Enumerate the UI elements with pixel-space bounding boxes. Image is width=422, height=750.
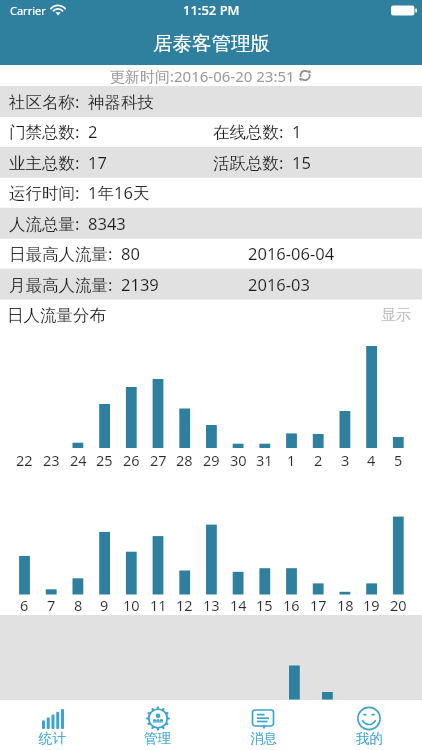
staticText: 31 xyxy=(256,450,273,470)
button[interactable]: 管理 xyxy=(105,700,210,750)
staticText: 13 xyxy=(203,595,220,615)
staticText: 11:52 PM xyxy=(183,1,240,19)
staticText: 日人流量分布 xyxy=(7,305,106,326)
staticText: 27 xyxy=(150,450,167,470)
staticText: 12 xyxy=(176,595,193,615)
staticText: 我的 xyxy=(356,730,383,747)
staticText: 25 xyxy=(96,450,113,470)
staticText: 22 xyxy=(16,450,33,470)
staticText: 7 xyxy=(47,595,56,615)
staticText: 人流总量: 8343 xyxy=(9,212,126,235)
staticText: 14 xyxy=(230,595,247,615)
staticText: 社区名称: 神器科技 xyxy=(9,90,155,113)
staticText: 显示 xyxy=(381,306,411,325)
staticText: 26 xyxy=(123,450,140,470)
staticText: Carrier xyxy=(10,3,46,18)
button[interactable]: 显示 xyxy=(370,300,422,331)
staticText: 4 xyxy=(367,450,376,470)
staticText: 运行时间: 1年16天 xyxy=(9,181,150,204)
staticText: 11 xyxy=(150,595,167,615)
staticText: 日最高人流量: 80 xyxy=(9,242,140,265)
staticText: 统计 xyxy=(39,730,66,747)
staticText: 更新时间:2016-06-20 23:51 xyxy=(110,66,295,86)
staticText: 29 xyxy=(203,450,220,470)
staticText: 1 xyxy=(287,450,296,470)
staticText: 30 xyxy=(230,450,247,470)
button[interactable]: 我的 xyxy=(316,700,422,750)
staticText: 19 xyxy=(363,595,380,615)
staticText: 10 xyxy=(123,595,140,615)
staticText: 2016-03 xyxy=(248,273,310,295)
staticText: 月最高人流量: 2139 xyxy=(9,273,159,296)
staticText: 消息 xyxy=(250,730,277,747)
staticText: 2016-06-04 xyxy=(248,242,335,264)
staticText: 2 xyxy=(314,450,323,470)
button[interactable]: 统计 xyxy=(0,700,105,750)
staticText: 5 xyxy=(394,450,403,470)
staticText: 3 xyxy=(341,450,350,470)
staticText: 8 xyxy=(74,595,83,615)
staticText: 18 xyxy=(337,595,354,615)
staticText: 24 xyxy=(70,450,87,470)
staticText: 6 xyxy=(20,595,29,615)
staticText: 20 xyxy=(390,595,407,615)
staticText: 在线总数: 1 xyxy=(213,120,302,143)
staticText: 16 xyxy=(283,595,300,615)
staticText: 28 xyxy=(176,450,193,470)
staticText: 管理 xyxy=(144,730,171,747)
staticText: 居泰客管理版 xyxy=(153,31,270,56)
staticText: 业主总数: 17 xyxy=(9,151,107,174)
staticText: 23 xyxy=(43,450,60,470)
staticText: 15 xyxy=(256,595,273,615)
other: 我的 xyxy=(357,708,381,729)
staticText: 门禁总数: 2 xyxy=(9,120,98,143)
button[interactable]: 消息 xyxy=(210,700,316,750)
other: 管理 xyxy=(145,708,171,729)
staticText: 9 xyxy=(100,595,109,615)
staticText: 17 xyxy=(310,595,327,615)
staticText: 活跃总数: 15 xyxy=(213,151,311,174)
